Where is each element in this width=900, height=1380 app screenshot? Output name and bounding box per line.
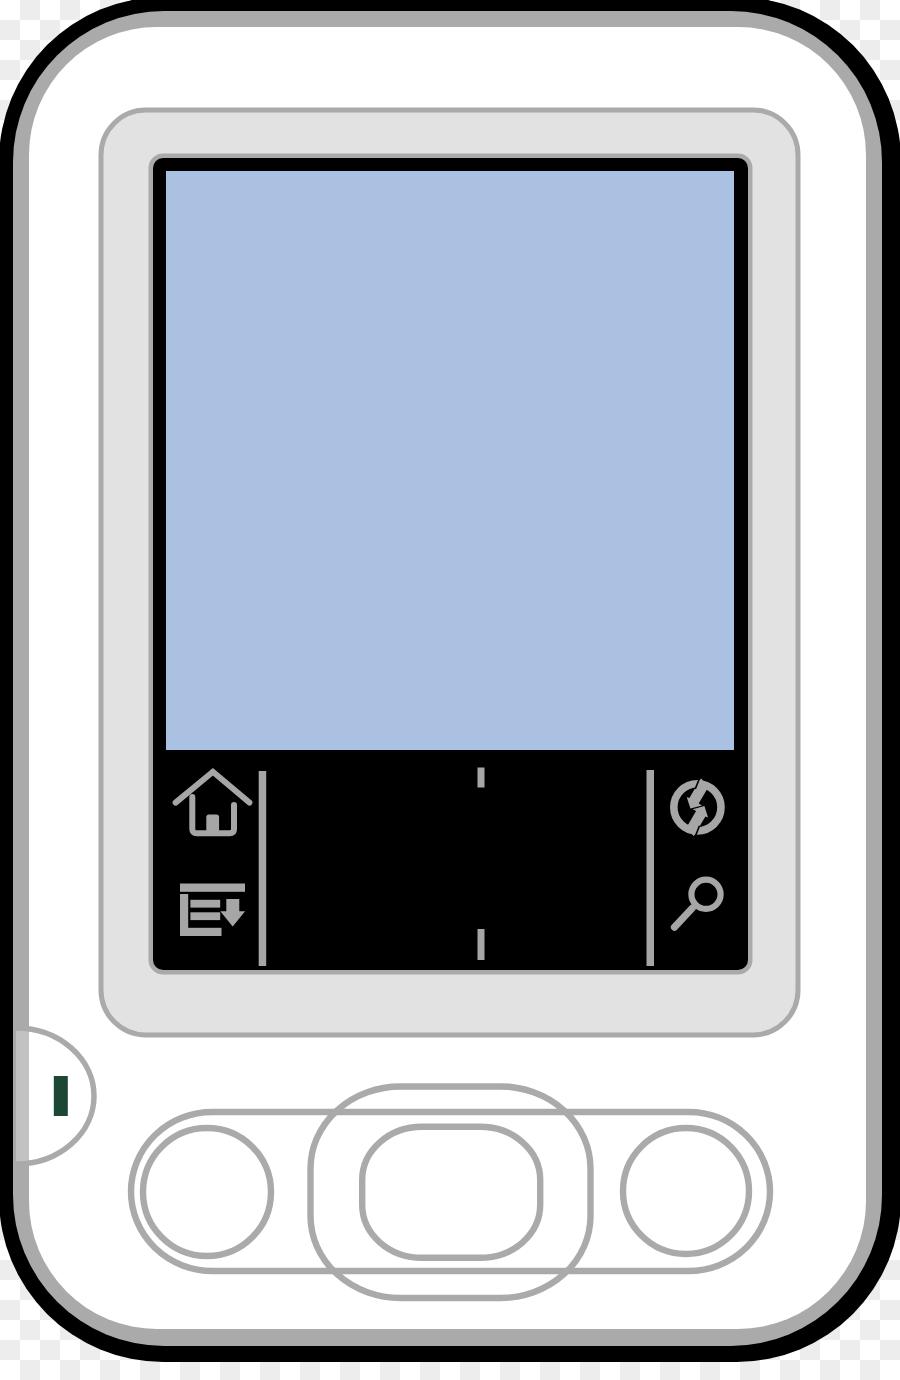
button[interactable]: Contacts button bbox=[622, 1128, 750, 1256]
button[interactable]: Five way navigator bbox=[310, 1086, 591, 1298]
button[interactable]: Sync bbox=[663, 770, 735, 846]
button[interactable]: Menu bbox=[170, 876, 256, 946]
button[interactable]: Home bbox=[170, 766, 256, 842]
button[interactable]: Power button bbox=[16, 1028, 94, 1164]
button[interactable]: Search bbox=[663, 862, 735, 932]
button[interactable]: Calendar button bbox=[143, 1128, 271, 1256]
